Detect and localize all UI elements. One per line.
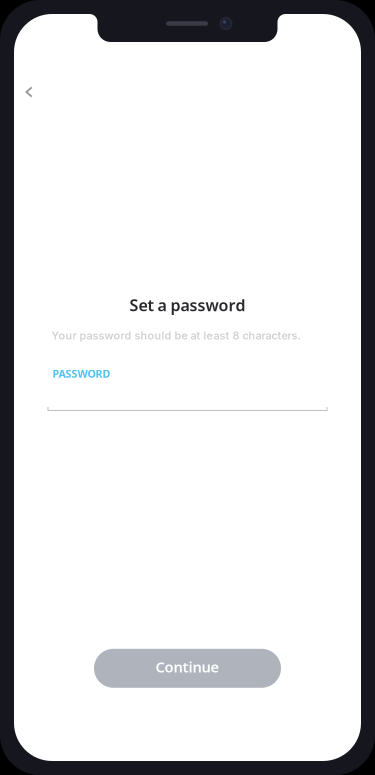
staticText: Your password should be at least 8 chara… — [51, 329, 300, 342]
button[interactable]: Back — [11, 74, 47, 110]
staticText: Continue — [155, 657, 219, 677]
staticText: PASSWORD — [52, 366, 110, 381]
button[interactable]: Continue — [94, 649, 281, 688]
staticText: Set a password — [129, 294, 245, 316]
